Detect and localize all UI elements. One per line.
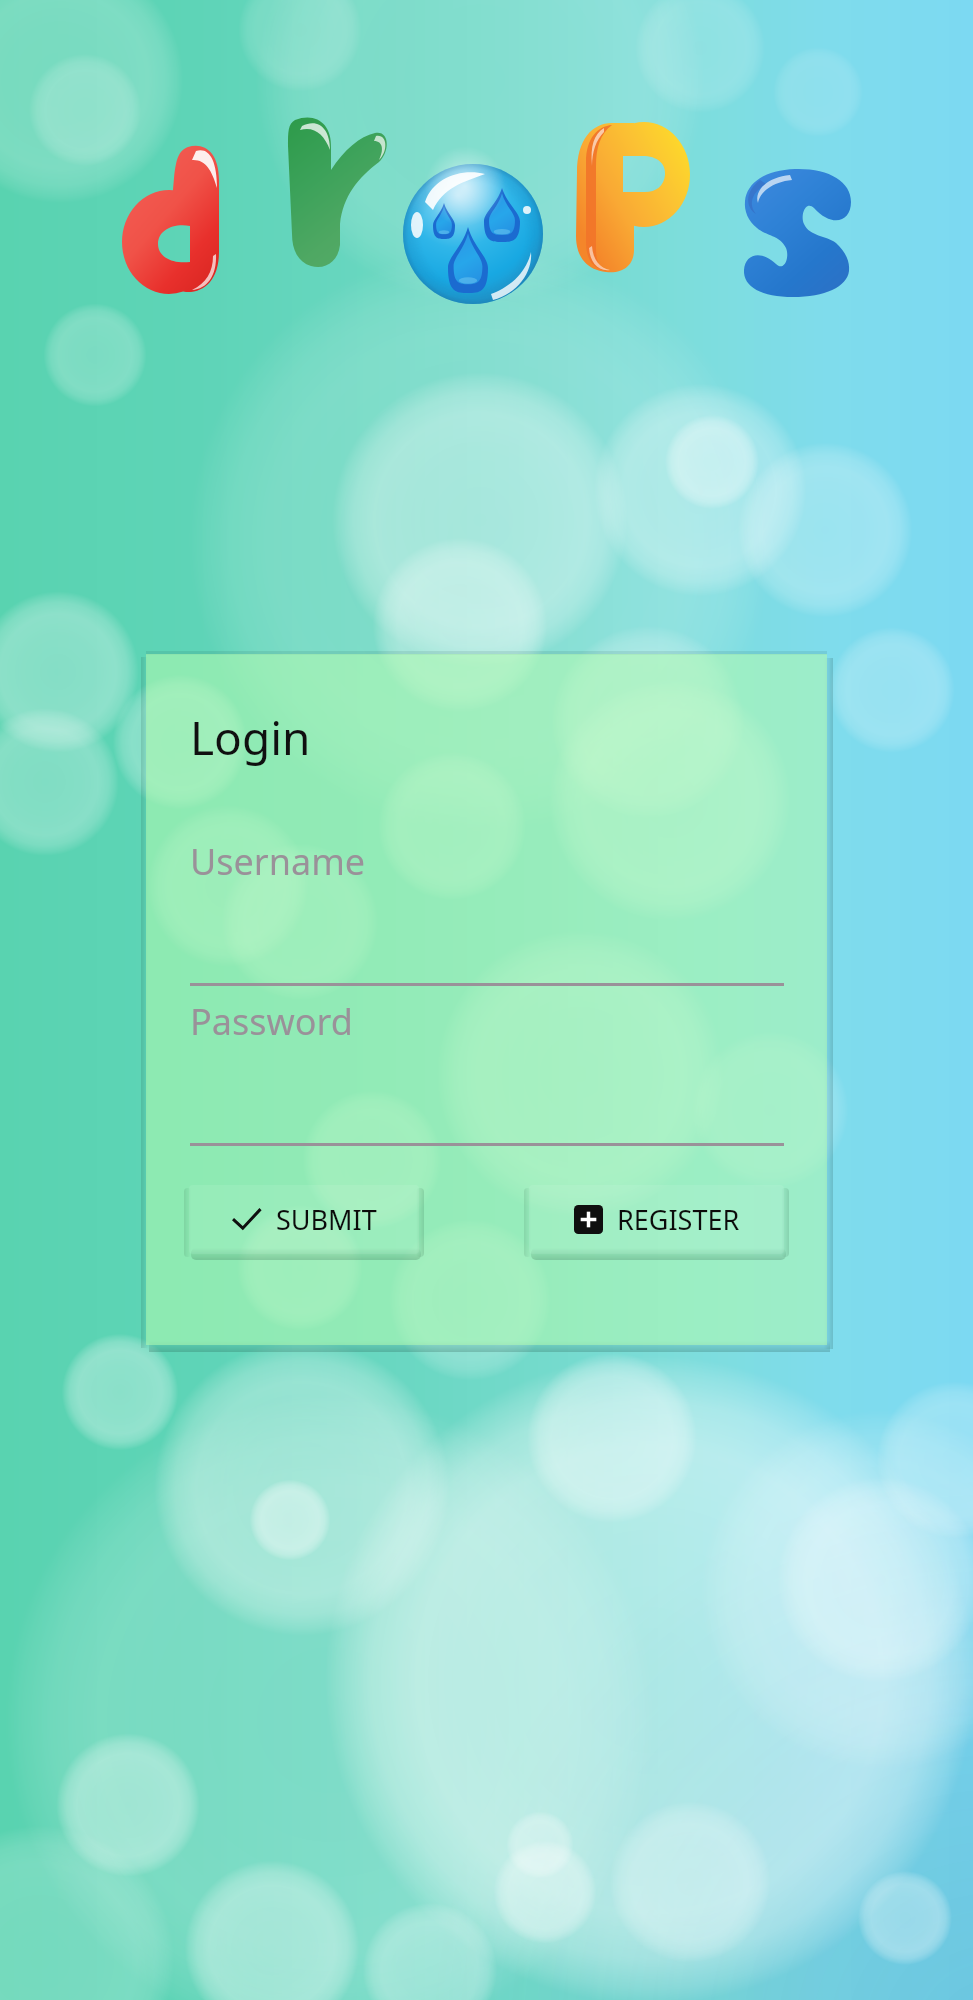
button[interactable]: REGISTER: [529, 1185, 784, 1254]
staticText: Login: [190, 706, 311, 769]
button[interactable]: SUBMIT: [189, 1185, 419, 1254]
staticText: Username: [190, 837, 366, 886]
staticText: SUBMIT: [276, 1201, 377, 1238]
staticText: Password: [190, 997, 353, 1046]
staticText: REGISTER: [617, 1201, 740, 1238]
